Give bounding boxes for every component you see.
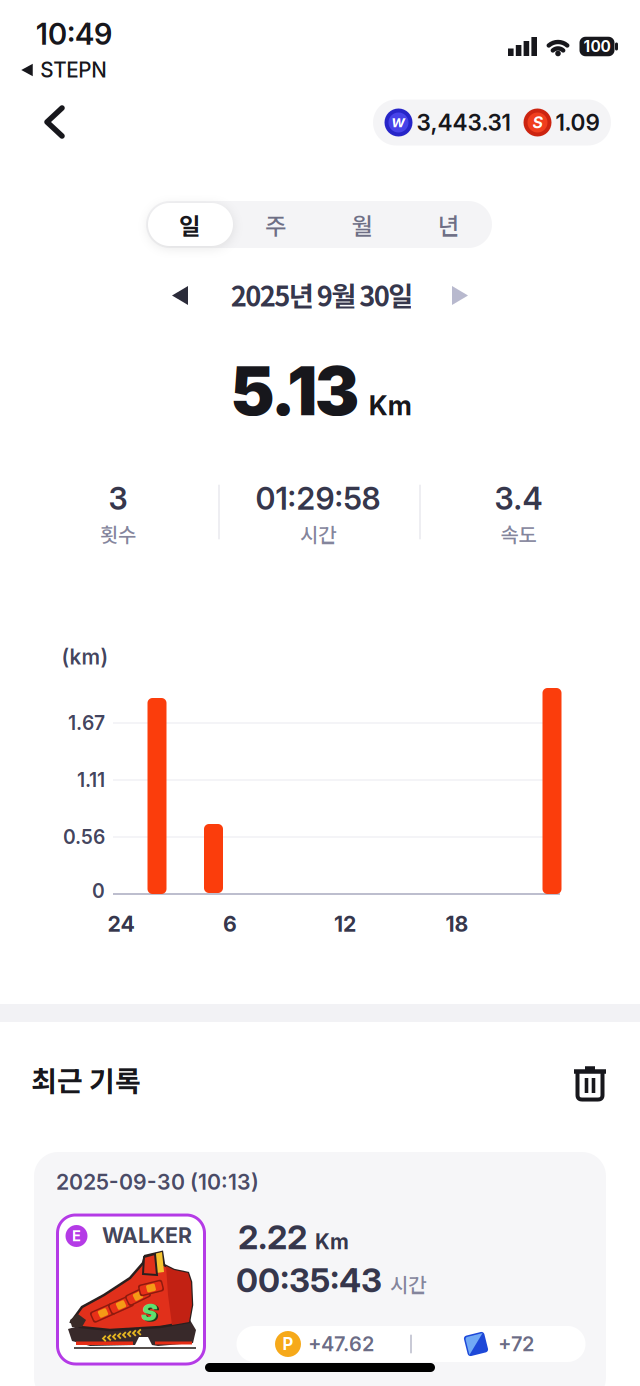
staticText: (km) (61, 644, 108, 669)
button[interactable]: Delete records (574, 1065, 608, 1103)
staticText: 주 (265, 208, 286, 241)
staticText: 3 (108, 480, 127, 517)
staticText: 10:49 (36, 16, 112, 52)
staticText: +47.62 (308, 1332, 374, 1356)
staticText: STEPN (40, 57, 107, 82)
staticText: 시간 (390, 1269, 426, 1298)
staticText: 1.11 (77, 768, 105, 792)
button[interactable]: Recent record 2025-09-30 (34, 1152, 606, 1386)
staticText: 24 (107, 911, 134, 937)
button[interactable]: Back to STEPN (21, 57, 107, 82)
staticText: +72 (498, 1332, 534, 1356)
button[interactable]: Wallet balance (373, 99, 611, 145)
staticText: 속도 (500, 519, 536, 548)
button[interactable]: 주 (232, 201, 318, 248)
staticText: 00:35:43 (236, 1260, 382, 1300)
staticText: w (391, 112, 405, 131)
staticText: 2.22 (238, 1217, 307, 1257)
staticText: 0 (92, 879, 105, 903)
staticText: WALKER (102, 1223, 192, 1248)
staticText: 년 (438, 208, 459, 241)
staticText: 6 (223, 911, 237, 937)
staticText: P (282, 1334, 293, 1354)
staticText: 3,443.31 (416, 109, 510, 136)
staticText: Km (315, 1229, 349, 1254)
staticText: Km (369, 389, 412, 422)
staticText: 100 (583, 37, 610, 56)
staticText: S (532, 113, 542, 132)
staticText: 01:29:58 (255, 480, 380, 517)
staticText: 12 (334, 911, 356, 937)
staticText: 0.56 (63, 825, 105, 849)
button[interactable]: 월 (319, 201, 405, 248)
button[interactable]: 일 (146, 201, 232, 248)
staticText: 2025-09-30 (10:13) (56, 1169, 259, 1195)
staticText: E (72, 1227, 81, 1245)
button[interactable]: Back (44, 105, 66, 139)
staticText: S (142, 1298, 158, 1327)
staticText: 일 (179, 208, 200, 241)
staticText: 3.4 (494, 480, 542, 517)
staticText: 18 (445, 911, 468, 937)
button[interactable]: Previous day (172, 286, 188, 305)
staticText: 최근 기록 (31, 1059, 141, 1099)
staticText: S (141, 1297, 157, 1326)
button[interactable]: 년 (405, 201, 491, 248)
staticText: 5.13 (230, 351, 360, 431)
staticText: 월 (351, 208, 372, 241)
staticText: 시간 (300, 519, 336, 548)
staticText: 1.67 (68, 711, 105, 735)
staticText: 2025년 9월 30일 (231, 275, 413, 314)
button[interactable]: Next day (452, 286, 468, 305)
staticText: 횟수 (100, 519, 136, 548)
staticText: 1.09 (555, 109, 599, 136)
